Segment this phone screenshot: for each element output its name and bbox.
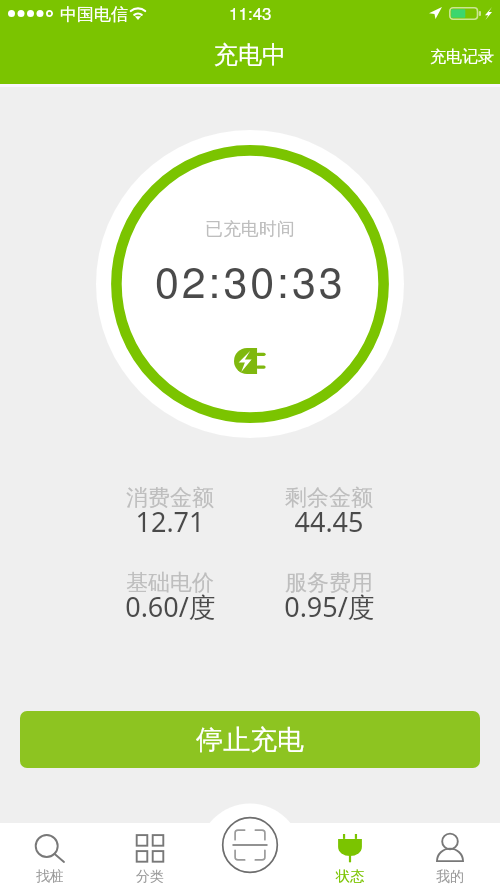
staticText: 11:43 <box>229 0 272 24</box>
staticText: 找桩 <box>36 868 64 886</box>
button[interactable]: 扫一扫 <box>221 816 279 874</box>
staticText: 充电记录 <box>430 47 494 65</box>
staticText: 基础电价 <box>126 569 214 597</box>
staticText: 44.45 <box>294 503 364 540</box>
staticText: 已充电时间 <box>205 218 295 241</box>
staticText: 停止充电 <box>196 723 304 757</box>
button[interactable]: 分类 <box>100 823 200 889</box>
button[interactable]: 停止充电 <box>20 711 480 768</box>
staticText: 我的 <box>436 868 464 886</box>
button[interactable]: 状态 <box>300 823 400 889</box>
staticText: 0.60/度 <box>125 588 216 625</box>
button[interactable]: 我的 <box>400 823 500 889</box>
staticText: 状态 <box>336 868 364 886</box>
staticText: 分类 <box>136 868 164 886</box>
staticText: 剩余金额 <box>285 484 373 512</box>
button[interactable]: 找桩 <box>0 823 100 889</box>
staticText: 充电中 <box>214 40 286 70</box>
staticText: 0.95/度 <box>284 588 375 625</box>
staticText: 服务费用 <box>285 569 373 597</box>
button[interactable]: 充电记录 <box>416 35 500 75</box>
staticText: 02:30:33 <box>155 249 346 311</box>
staticText: 12.71 <box>135 503 205 540</box>
staticText: 中国电信 <box>60 4 128 25</box>
staticText: 消费金额 <box>126 484 214 512</box>
